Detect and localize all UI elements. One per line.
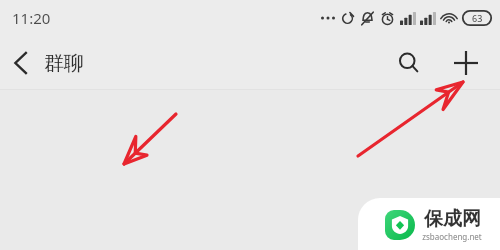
button[interactable]: Back <box>0 42 36 84</box>
button[interactable]: Add <box>444 41 488 85</box>
staticText: 63 <box>472 12 483 24</box>
staticText: 11:20 <box>12 8 51 28</box>
staticText: 保成网 <box>424 207 481 231</box>
staticText: zsbaocheng.net <box>422 231 482 242</box>
staticText: 群聊 <box>44 51 84 76</box>
button[interactable]: Search <box>388 42 430 84</box>
